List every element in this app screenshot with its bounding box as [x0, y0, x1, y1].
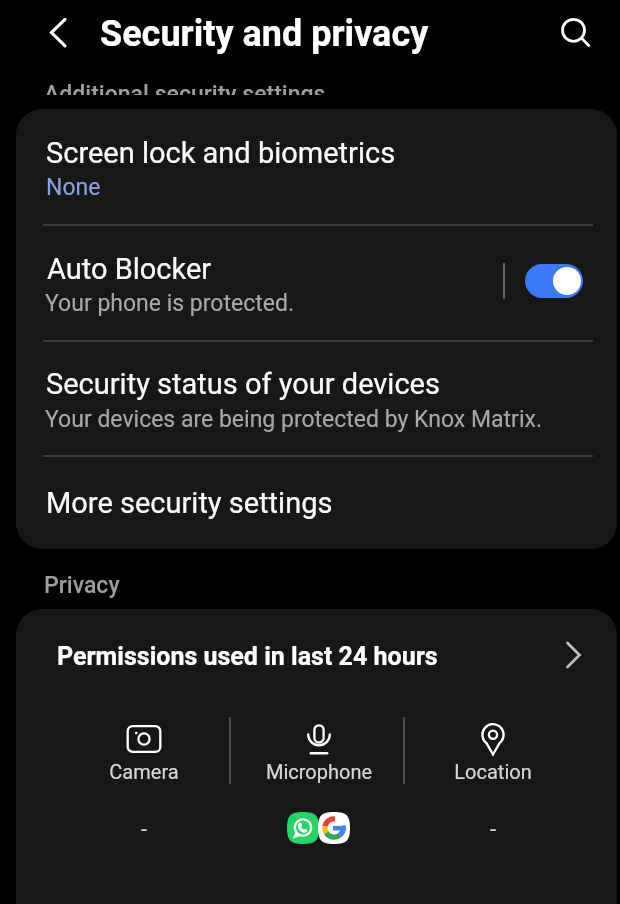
staticText: None: [46, 174, 101, 201]
button[interactable]: Microphone: [301, 721, 337, 757]
staticText: Auto Blocker: [47, 252, 212, 286]
staticText: -: [393, 817, 593, 843]
button[interactable]: Auto Blocker toggle: [525, 264, 583, 298]
button[interactable]: Camera: [126, 721, 162, 757]
button[interactable]: Security status of your devices: [16, 341, 617, 456]
staticText: Location: [393, 760, 593, 783]
button[interactable]: Permissions used in last 24 hours: [16, 609, 617, 701]
button[interactable]: Back: [35, 9, 82, 56]
staticText: Additional security settings: [44, 81, 326, 95]
button[interactable]: More security settings: [16, 456, 617, 549]
button[interactable]: Search: [551, 7, 597, 53]
button[interactable]: Screen lock and biometrics: [16, 109, 617, 225]
staticText: Your devices are being protected by Knox…: [45, 406, 542, 433]
staticText: -: [44, 817, 244, 843]
staticText: Screen lock and biometrics: [46, 136, 396, 170]
staticText: Permissions used in last 24 hours: [57, 642, 438, 671]
staticText: Security and privacy: [100, 13, 429, 55]
button[interactable]: Location: [475, 721, 511, 757]
staticText: Camera: [44, 760, 244, 783]
staticText: Your phone is protected.: [45, 290, 294, 317]
staticText: Security status of your devices: [46, 367, 440, 401]
staticText: More security settings: [46, 486, 333, 520]
staticText: Microphone: [219, 760, 419, 783]
staticText: Privacy: [44, 572, 120, 599]
